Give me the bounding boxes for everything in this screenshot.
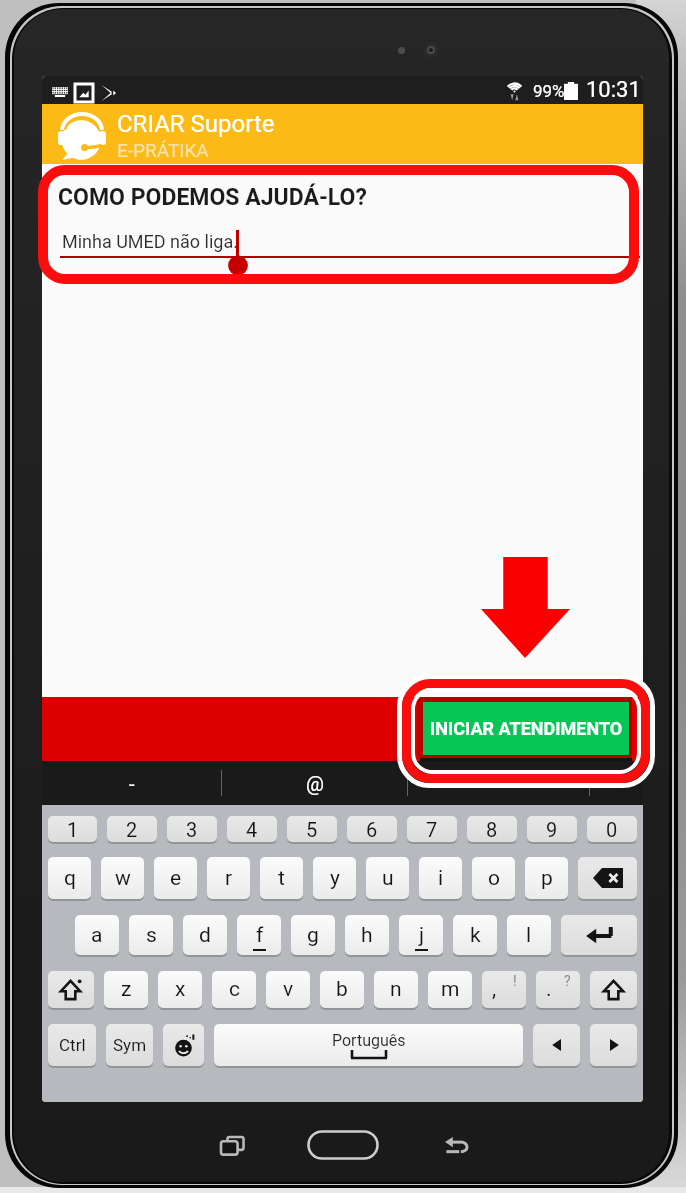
button[interactable]: 0 [587, 816, 637, 842]
staticText: 3 [186, 818, 198, 841]
staticText: 10:31 [586, 77, 641, 103]
staticText: 99% [533, 81, 565, 101]
button[interactable]: 6 [347, 816, 397, 842]
staticText: c [229, 977, 240, 1002]
button[interactable]: u [366, 857, 409, 899]
staticText: 8 [486, 818, 498, 841]
staticText: q [64, 866, 76, 891]
button[interactable]: g [291, 915, 335, 955]
staticText: x [175, 977, 186, 1002]
button[interactable]: q [48, 857, 91, 899]
button[interactable]: EMOJI [163, 1024, 204, 1066]
button[interactable]: k [453, 915, 497, 955]
button[interactable]: t [260, 857, 303, 899]
button[interactable]: h [345, 915, 389, 955]
button[interactable]: w [101, 857, 144, 899]
button[interactable]: c [212, 971, 256, 1008]
button[interactable]: d [183, 915, 227, 955]
staticText: g [307, 923, 319, 948]
staticText: z [121, 977, 132, 1002]
button[interactable]: Ctrl [48, 1024, 96, 1066]
staticText: h [361, 923, 373, 948]
button[interactable]: m [428, 971, 472, 1008]
button[interactable]: 9 [527, 816, 577, 842]
staticText: k [470, 923, 481, 948]
button[interactable]: o [472, 857, 515, 899]
button[interactable]: INICIAR ATENDIMENTO [423, 702, 629, 755]
button[interactable]: , [482, 971, 526, 1008]
button[interactable]: 1 [48, 816, 97, 842]
staticText: i [438, 866, 444, 891]
button[interactable]: x [158, 971, 202, 1008]
staticText: ? [564, 973, 571, 989]
button[interactable]: 5 [287, 816, 337, 842]
staticText: E-PRÁTIKA [117, 139, 209, 161]
staticText: Ctrl [59, 1035, 86, 1055]
button[interactable]: p [525, 857, 568, 899]
button[interactable]: y [313, 857, 356, 899]
button[interactable]: @ [222, 761, 407, 805]
button[interactable] [408, 761, 589, 805]
button[interactable]: BKSP [578, 857, 637, 899]
button[interactable]: 3 [167, 816, 217, 842]
staticText: CRIAR Suporte [117, 110, 275, 138]
staticText: o [488, 866, 500, 891]
button[interactable]: Sym [106, 1024, 153, 1066]
button[interactable]: b [320, 971, 364, 1008]
staticText: Minha UMED não liga. [62, 231, 238, 252]
button[interactable]: Back [412, 1119, 500, 1171]
staticText: 2 [126, 818, 138, 841]
button[interactable]: l [507, 915, 551, 955]
staticText: r [225, 866, 233, 891]
button[interactable]: RIGHT [590, 1024, 637, 1066]
staticText: 5 [306, 818, 318, 841]
staticText: n [390, 977, 402, 1002]
button[interactable]: 4 [227, 816, 277, 842]
button[interactable]: z [104, 971, 148, 1008]
staticText: s [146, 923, 157, 948]
staticText: - [129, 772, 135, 795]
button[interactable]: a [75, 915, 119, 955]
staticText: b [336, 977, 348, 1002]
button[interactable]: . [536, 971, 580, 1008]
staticText: 6 [366, 818, 378, 841]
staticText: j [419, 923, 425, 948]
staticText: 1 [67, 818, 79, 841]
staticText: , [492, 977, 497, 1002]
staticText: m [441, 977, 460, 1002]
staticText: INICIAR ATENDIMENTO [430, 718, 623, 739]
button[interactable]: s [129, 915, 173, 955]
staticText: a [91, 923, 103, 948]
button[interactable]: n [374, 971, 418, 1008]
button[interactable]: j [399, 915, 443, 955]
staticText: y [330, 866, 340, 891]
staticText: Sym [113, 1035, 147, 1055]
button[interactable]: Home [298, 1119, 388, 1171]
button[interactable]: v [266, 971, 310, 1008]
staticText: 7 [426, 818, 438, 841]
button[interactable]: r [207, 857, 250, 899]
staticText: u [382, 866, 394, 891]
staticText: ! [513, 973, 517, 989]
button[interactable]: SHIFT [48, 971, 94, 1008]
staticText: . [546, 977, 552, 1002]
staticText: f [256, 923, 264, 948]
staticText: 4 [246, 818, 258, 841]
staticText: w [115, 866, 131, 891]
staticText: p [541, 866, 553, 891]
button[interactable]: e [154, 857, 197, 899]
button[interactable]: 2 [107, 816, 157, 842]
button[interactable]: Recents [188, 1119, 276, 1171]
staticText: @ [306, 772, 324, 795]
button[interactable]: SHIFT2 [590, 971, 637, 1008]
button[interactable]: Expand suggestions [590, 761, 643, 805]
button[interactable]: SPACE [214, 1024, 523, 1066]
button[interactable]: i [419, 857, 462, 899]
button[interactable]: ENTER [561, 915, 637, 955]
button[interactable]: 8 [467, 816, 517, 842]
button[interactable]: f [237, 915, 281, 955]
button[interactable]: 7 [407, 816, 457, 842]
button[interactable]: - [42, 761, 221, 805]
staticText: 9 [546, 818, 558, 841]
button[interactable]: LEFT [533, 1024, 580, 1066]
